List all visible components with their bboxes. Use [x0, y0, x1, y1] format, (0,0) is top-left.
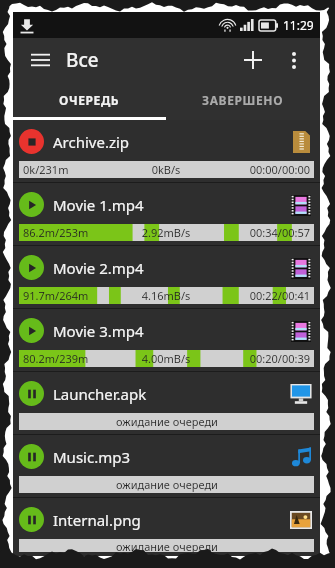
button[interactable]: Downloading: [19, 318, 44, 343]
button[interactable]: Paused: [19, 507, 44, 532]
staticText: Archive.zip: [53, 132, 288, 152]
button[interactable]: Stopped: [19, 129, 44, 154]
button[interactable]: Downloading: [13, 246, 320, 308]
staticText: 0kB/s: [118, 162, 214, 177]
staticText: 00:34/00:57: [214, 225, 310, 240]
staticText: 00:00/00:00: [214, 162, 310, 177]
staticText: Internal.png: [53, 510, 288, 530]
staticText: 0k/231m: [23, 162, 118, 177]
staticText: 80.2m/239m: [23, 351, 118, 366]
staticText: Movie 2.mp4: [53, 258, 288, 278]
staticText: ожидание очереди: [116, 414, 218, 429]
button[interactable]: Downloading: [19, 192, 44, 217]
button[interactable]: ЗАВЕРШЕНО: [166, 82, 320, 117]
staticText: ЗАВЕРШЕНО: [202, 92, 284, 108]
staticText: Launcher.apk: [53, 384, 288, 404]
button[interactable]: Open navigation menu: [25, 45, 55, 75]
staticText: Movie 1.mp4: [53, 195, 288, 215]
staticText: 86.2m/253m: [23, 225, 118, 240]
staticText: ожидание очереди: [116, 477, 218, 492]
staticText: 00:20/00:39: [214, 351, 310, 366]
button[interactable]: ОЧЕРЕДЬ: [13, 82, 166, 117]
staticText: Movie 3.mp4: [53, 321, 288, 341]
staticText: 4.16mB/s: [118, 288, 214, 303]
button[interactable]: Paused: [13, 372, 320, 434]
button[interactable]: Add download: [236, 43, 270, 77]
staticText: 11:29: [283, 17, 314, 33]
button[interactable]: Paused: [19, 444, 44, 469]
button[interactable]: Paused: [13, 435, 320, 497]
button[interactable]: Downloading: [13, 309, 320, 371]
button[interactable]: Downloading: [19, 255, 44, 280]
staticText: 91.7m/264m: [23, 288, 118, 303]
staticText: Все: [66, 47, 99, 73]
staticText: ожидание очереди: [116, 539, 218, 552]
staticText: ОЧЕРЕДЬ: [59, 92, 120, 108]
staticText: 2.92mB/s: [118, 225, 214, 240]
button[interactable]: Stopped: [13, 120, 320, 182]
staticText: Music.mp3: [53, 447, 288, 467]
button[interactable]: Paused: [13, 498, 320, 556]
button[interactable]: Downloading: [13, 183, 320, 245]
staticText: 4.00mB/s: [118, 351, 214, 366]
staticText: 00:22/00:41: [214, 288, 310, 303]
button[interactable]: Paused: [19, 381, 44, 406]
button[interactable]: More options: [278, 44, 310, 76]
